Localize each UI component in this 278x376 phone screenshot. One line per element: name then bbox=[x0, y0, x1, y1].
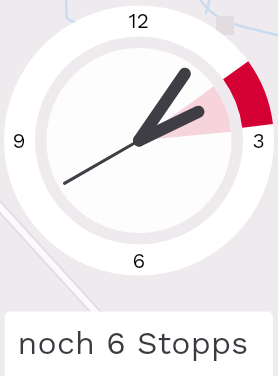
button[interactable] bbox=[0, 0, 278, 376]
button[interactable]: Verbleibende Zeit bbox=[0, 0, 278, 376]
